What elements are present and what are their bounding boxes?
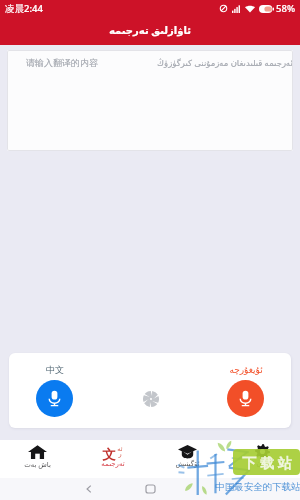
button[interactable]: 中文 <box>36 364 73 417</box>
staticText: 下 载 站 <box>242 453 292 472</box>
staticText: باش بەت <box>24 460 51 470</box>
staticText: 中文 <box>46 364 64 375</box>
staticText: 请输入翻译的内容 <box>26 57 98 68</box>
staticText: ئۆگىنىش <box>175 460 200 468</box>
button[interactable]: Back <box>82 482 96 496</box>
staticText: ئە <box>117 445 123 453</box>
staticText: ئۇيغۇرچە <box>229 365 263 375</box>
button[interactable]: مەن <box>225 440 300 478</box>
staticText: 中国最安全的下载站 <box>215 481 300 493</box>
button[interactable]: باش بەت <box>0 440 75 478</box>
staticText: ر <box>118 450 122 458</box>
staticText: 凌晨2:44 <box>5 2 43 15</box>
button[interactable]: Home <box>143 482 157 496</box>
staticText: ئەرجىمە قىلىدىغان مەزمۇننى كىرگۈزۈڭ <box>157 57 293 69</box>
staticText: 58% <box>276 2 295 15</box>
staticText: 文 <box>102 446 116 461</box>
button[interactable]: ئۆگىنىش <box>150 440 225 478</box>
staticText: مەن <box>256 460 269 468</box>
button[interactable]: 请输入翻译的内容 <box>7 50 293 151</box>
staticText: ئاۋازلىق تەرجىمە <box>109 23 191 37</box>
button[interactable]: Camera translate <box>139 387 163 411</box>
button[interactable]: 文 <box>75 440 150 478</box>
staticText: تەرجىمە <box>101 460 125 468</box>
button[interactable]: ئۇيغۇرچە <box>227 365 264 417</box>
